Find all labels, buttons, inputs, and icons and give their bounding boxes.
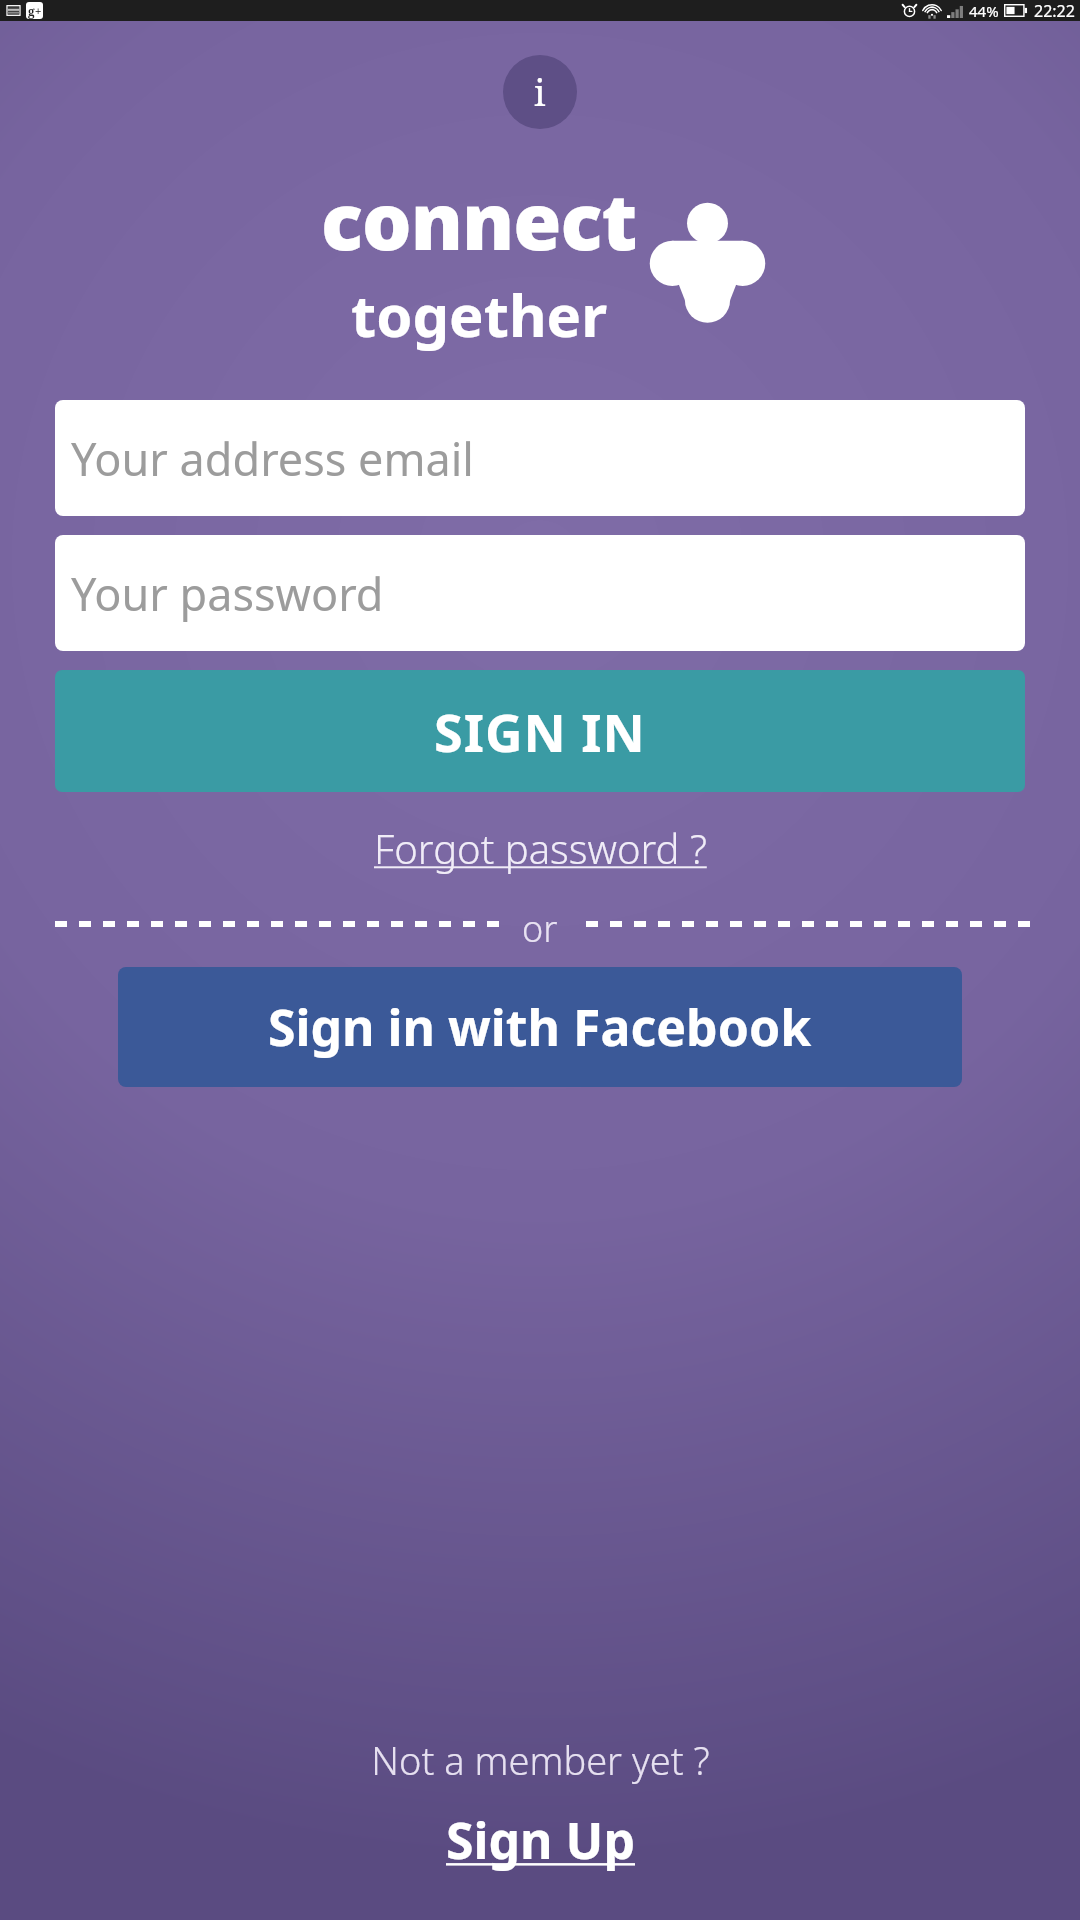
staticText: 22:22 xyxy=(1034,0,1075,21)
button[interactable]: Sign Up xyxy=(432,1802,649,1878)
staticText: or xyxy=(522,904,558,944)
staticText: Not a member yet ? xyxy=(371,1734,710,1786)
staticText: Your address email xyxy=(71,428,474,489)
staticText: Sign Up xyxy=(446,1806,635,1874)
button[interactable]: SIGN IN xyxy=(55,670,1025,792)
staticText: connect xyxy=(321,167,637,273)
button[interactable]: Your password xyxy=(55,535,1025,651)
staticText: g+ xyxy=(28,3,42,19)
staticText: 44% xyxy=(969,1,999,21)
staticText: Sign in with Facebook xyxy=(268,993,812,1061)
button[interactable]: Forgot password ? xyxy=(364,815,717,881)
button[interactable]: Your address email xyxy=(55,400,1025,516)
staticText: Forgot password ? xyxy=(374,821,707,875)
staticText: i xyxy=(534,68,546,117)
button[interactable]: Sign in with Facebook xyxy=(118,967,962,1087)
button[interactable]: Information xyxy=(503,55,577,129)
staticText: SIGN IN xyxy=(434,696,646,767)
staticText: Your password xyxy=(71,563,384,624)
staticText: together xyxy=(351,275,608,354)
